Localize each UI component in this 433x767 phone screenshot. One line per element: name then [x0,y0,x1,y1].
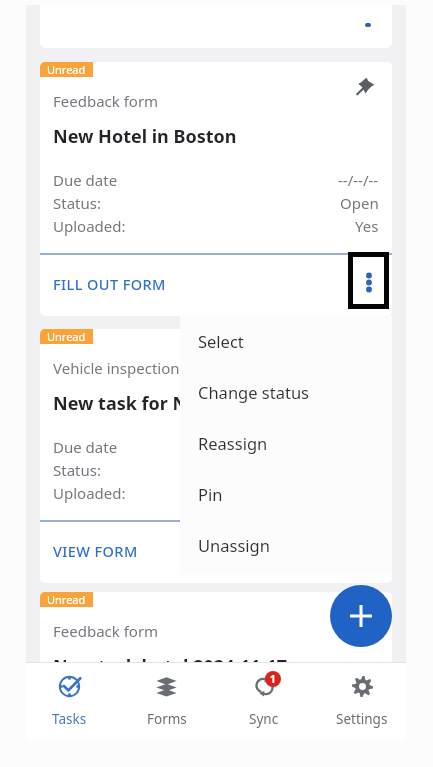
staticText: Unread [47,329,86,344]
staticText: Yes [355,216,379,236]
staticText: --/--/-- [338,700,379,720]
staticText: Open [340,721,379,740]
staticText: Open [340,193,379,213]
button[interactable]: Change status [180,366,392,417]
staticText: Status: [53,460,101,480]
button[interactable]: Unassign [180,519,392,570]
button[interactable]: More options [348,252,389,309]
button[interactable]: Tasks [21,663,118,740]
staticText: Tasks [52,710,87,728]
button[interactable]: Reassign [180,417,392,468]
staticText: Unread [47,592,86,607]
staticText: New Hotel in Boston [53,124,237,148]
button[interactable]: Settings [313,663,411,740]
button[interactable]: Pin [180,468,392,519]
staticText: Change status [198,381,309,403]
button[interactable]: 1 [215,663,313,740]
staticText: FILL OUT FORM [53,274,166,294]
staticText: Status: [53,721,101,740]
staticText: Feedback form [53,621,159,641]
staticText: 1 [270,672,276,686]
button[interactable]: Unread [40,62,392,316]
staticText: Vehicle inspection [53,358,180,378]
staticText: New task for N [53,391,188,415]
button[interactable]: Select [180,315,392,366]
staticText: Feedback form [53,91,159,111]
staticText: Reassign [198,432,268,454]
staticText: Pin [198,483,223,505]
staticText: New task hotel 2024-11-17 [53,654,288,678]
staticText: Status: [53,193,101,213]
staticText: Unassign [198,534,270,556]
staticText: Sync [249,710,279,728]
staticText: Due date [53,437,118,457]
button[interactable]: Unread [40,592,392,740]
staticText: Unread [47,62,86,77]
staticText: --/--/-- [338,170,379,190]
staticText: Settings [336,710,388,728]
button[interactable]: Forms [118,663,215,740]
button[interactable]: Add task [330,585,392,647]
staticText: Due date [53,170,118,190]
staticText: Uploaded: [53,216,126,236]
staticText: Due date [53,700,118,720]
staticText: Forms [147,710,187,728]
button[interactable]: Unread [40,329,392,583]
staticText: Uploaded: [53,483,126,503]
staticText: VIEW FORM [53,541,138,561]
staticText: Select [198,330,244,352]
